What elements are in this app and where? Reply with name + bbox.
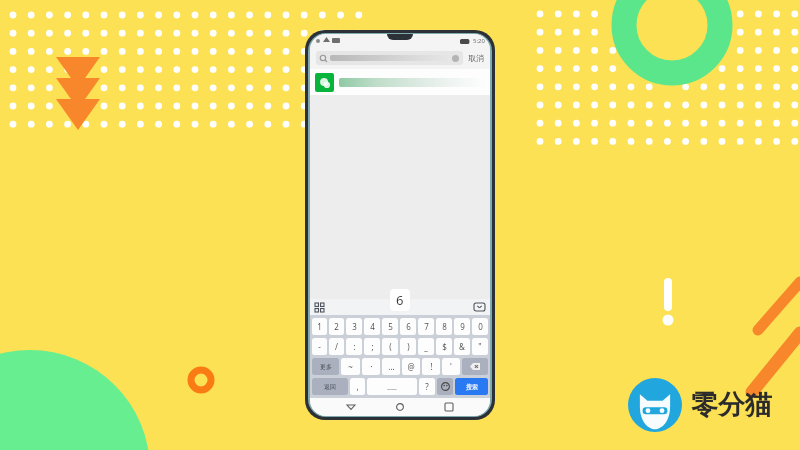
button[interactable]: Back [343,399,359,415]
button[interactable]: 9 [454,318,470,335]
button[interactable]: ) [400,338,416,355]
button[interactable]: Clear [452,55,459,62]
button[interactable]: ? [419,378,435,395]
staticText: 6 [396,291,404,309]
button[interactable]: 返回 [312,378,348,395]
staticText: 5:20 [473,37,485,45]
button[interactable]: ! [422,358,440,375]
staticText: - [318,341,321,352]
staticText: 0 [478,321,483,332]
staticText: ' [450,361,452,372]
button[interactable]: 搜索 [455,378,488,395]
button[interactable] [310,69,490,95]
staticText: ) [407,341,410,352]
staticText: … [388,361,395,372]
staticText: 8 [442,321,447,332]
staticText: 零分猫 [691,388,772,422]
button[interactable]: : [346,338,362,355]
button[interactable]: 取消 [468,53,484,63]
staticText: ~ [348,361,353,372]
button[interactable]: ( [382,338,398,355]
button[interactable]: 8 [436,318,452,335]
staticText: , [356,381,359,392]
button[interactable]: Recents [441,399,457,415]
button[interactable]: 更多 [312,358,339,375]
staticText: 返回 [324,383,336,391]
button[interactable]: , [350,378,365,395]
staticText: ___ [387,382,397,392]
staticText: / [335,341,338,352]
button[interactable]: 零分猫 logo [628,378,772,432]
staticText: 7 [424,321,429,332]
button[interactable]: 0 [472,318,488,335]
button[interactable]: · [362,358,380,375]
staticText: @ [407,361,415,372]
staticText: 6 [406,321,411,332]
button[interactable]: 5 [382,318,398,335]
button[interactable]: Keyboard layouts [315,303,324,312]
staticText: 5 [388,321,393,332]
button[interactable]: ~ [341,358,360,375]
button[interactable]: " [472,338,488,355]
button[interactable]: 7 [418,318,434,335]
staticText: 更多 [320,363,332,371]
button[interactable]: Hide keyboard [474,303,485,311]
staticText: 搜索 [466,383,478,391]
button[interactable]: Backspace [462,358,488,375]
button[interactable]: 2 [329,318,344,335]
staticText: : [353,341,356,352]
button[interactable]: ' [442,358,460,375]
staticText: 2 [334,321,339,332]
button[interactable]: 1 [312,318,327,335]
button[interactable]: 6 [400,318,416,335]
button[interactable]: … [382,358,400,375]
button[interactable]: 3 [346,318,362,335]
button[interactable]: Emoji [437,378,453,395]
staticText: & [459,341,465,352]
button[interactable]: & [454,338,470,355]
button[interactable]: - [312,338,327,355]
button[interactable]: / [329,338,344,355]
staticText: " [478,341,482,352]
button[interactable]: 4 [364,318,380,335]
button[interactable]: _ [418,338,434,355]
staticText: ! [430,361,433,372]
staticText: ; [371,341,374,352]
button[interactable]: ; [364,338,380,355]
staticText: ? [425,381,429,392]
button[interactable]: Clear [316,51,463,65]
button[interactable]: $ [436,338,452,355]
button[interactable]: ___ [367,378,417,395]
staticText: 9 [460,321,465,332]
staticText: · [370,361,373,372]
staticText: 3 [352,321,357,332]
staticText: ( [389,341,392,352]
button[interactable]: @ [402,358,420,375]
button[interactable]: Home [392,399,408,415]
staticText: 取消 [468,53,484,63]
staticText: 4 [370,321,375,332]
staticText: _ [424,341,428,352]
staticText: 1 [317,321,322,332]
staticText: $ [442,341,447,352]
